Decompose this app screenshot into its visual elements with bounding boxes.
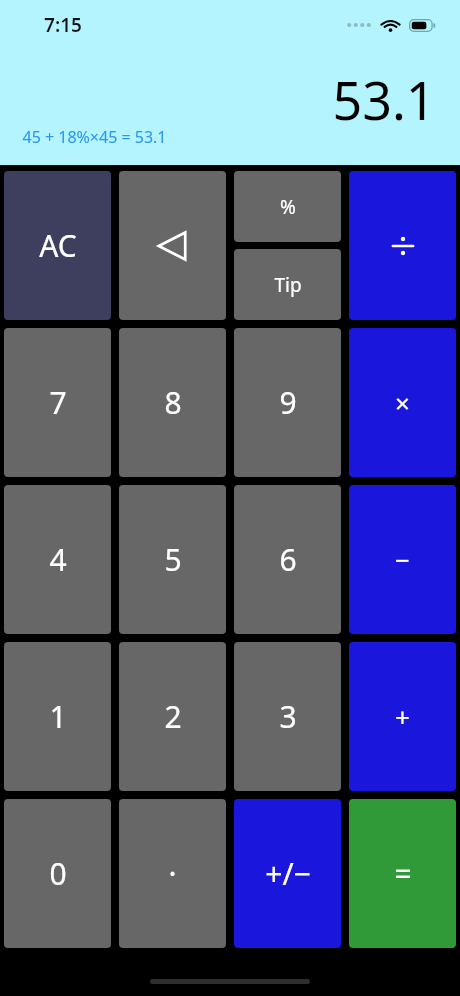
staticText: 1 <box>49 696 67 737</box>
staticText: 45 + 18%×45 = 53.1 <box>22 126 167 148</box>
button[interactable]: +/− <box>234 799 341 948</box>
button[interactable]: 0 <box>4 799 111 948</box>
button[interactable]: 5 <box>119 485 226 634</box>
button[interactable]: 2 <box>119 642 226 791</box>
button[interactable]: Tip <box>234 249 341 320</box>
staticText: = <box>394 853 412 894</box>
button[interactable]: · <box>119 799 226 948</box>
button[interactable]: Multiply <box>349 328 456 477</box>
staticText: 7 <box>49 382 67 423</box>
button[interactable]: 3 <box>234 642 341 791</box>
button[interactable]: 4 <box>4 485 111 634</box>
staticText: − <box>395 542 410 577</box>
button[interactable]: Divide <box>349 171 456 320</box>
button[interactable]: Minus <box>349 485 456 634</box>
staticText: + <box>395 699 410 734</box>
staticText: · <box>168 853 177 894</box>
staticText: AC <box>39 225 77 266</box>
staticText: 53.1 <box>332 64 436 135</box>
button[interactable]: 7 <box>4 328 111 477</box>
button[interactable]: Plus <box>349 642 456 791</box>
staticText: 5 <box>164 539 182 580</box>
button[interactable]: Backspace <box>119 171 226 320</box>
button[interactable]: = <box>349 799 456 948</box>
staticText: 8 <box>164 382 182 423</box>
staticText: 6 <box>279 539 297 580</box>
button[interactable]: 8 <box>119 328 226 477</box>
staticText: Tip <box>274 272 302 298</box>
button[interactable]: 1 <box>4 642 111 791</box>
staticText: 0 <box>49 853 67 894</box>
button[interactable]: AC <box>4 171 111 320</box>
staticText: 4 <box>49 539 67 580</box>
staticText: 3 <box>279 696 297 737</box>
staticText: % <box>280 194 296 220</box>
staticText: +/− <box>265 853 311 894</box>
button[interactable]: % <box>234 171 341 242</box>
staticText: × <box>395 385 410 420</box>
staticText: 9 <box>279 382 297 423</box>
button[interactable]: 9 <box>234 328 341 477</box>
staticText: 2 <box>164 696 182 737</box>
button[interactable]: 6 <box>234 485 341 634</box>
staticText: 7:15 <box>44 12 82 38</box>
